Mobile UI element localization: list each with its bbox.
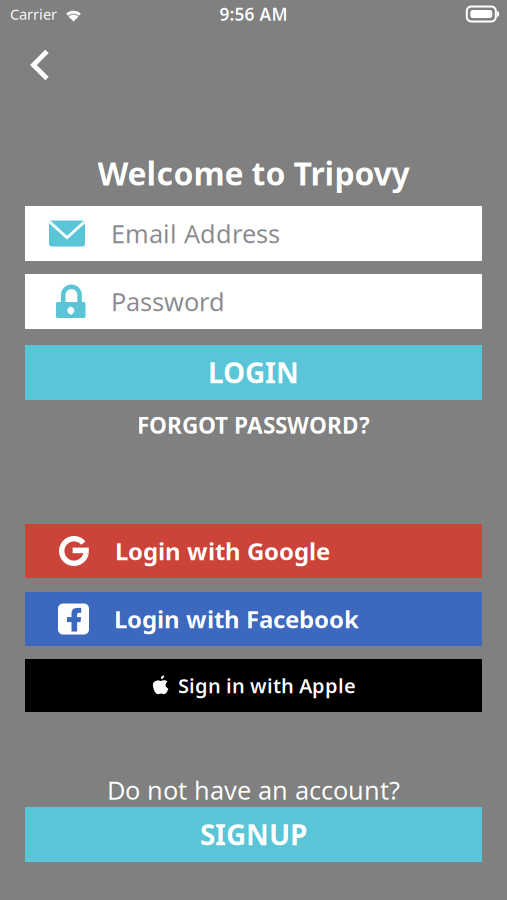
button[interactable]: LOGIN	[25, 345, 482, 400]
button[interactable]: Login with Google	[25, 524, 482, 578]
staticText: Email Address	[111, 217, 280, 250]
staticText: 9:56 AM	[219, 2, 287, 25]
staticText: Carrier	[10, 4, 57, 24]
button[interactable]: Back	[17, 28, 63, 80]
staticText: Do not have an account?	[107, 773, 400, 807]
button[interactable]: Sign in with Apple	[25, 659, 482, 712]
staticText: Sign in with Apple	[178, 672, 356, 699]
staticText: SIGNUP	[200, 816, 307, 853]
staticText: FORGOT PASSWORD?	[137, 410, 370, 440]
button[interactable]: Login with Facebook	[25, 592, 482, 646]
staticText: Login with Facebook	[114, 603, 359, 635]
staticText: Login with Google	[115, 535, 330, 567]
staticText: Welcome to Tripovy	[97, 152, 409, 194]
staticText: Password	[111, 285, 225, 318]
staticText: LOGIN	[208, 354, 299, 391]
button[interactable]: SIGNUP	[25, 807, 482, 862]
button[interactable]: FORGOT PASSWORD?	[137, 410, 370, 440]
